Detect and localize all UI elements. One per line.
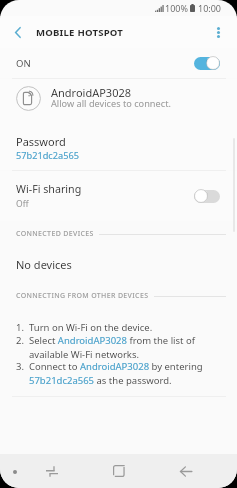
staticText: MOBILE HOTSPOT [36,26,124,39]
staticText: CONNECTED DEVICES [16,229,94,239]
button[interactable]: Recent apps [18,454,85,488]
button[interactable]: Wi-Fi sharing [0,171,237,221]
staticText: 2. [16,334,24,347]
button[interactable]: ON [0,48,237,78]
staticText: ON [16,57,31,70]
staticText: Turn on Wi-Fi on the device. [29,321,153,334]
button[interactable]: More options [203,16,233,48]
staticText: 57b21dc2a565 [16,149,79,162]
staticText: CONNECTING FROM OTHER DEVICES [16,291,149,301]
staticText: Select AndroidAP3028 from the list of av… [29,334,223,360]
staticText: Connect to AndroidAP3028 by entering 57b… [29,360,223,386]
button[interactable]: Hide navigation bar [3,460,27,484]
staticText: 1. [16,321,24,334]
button[interactable]: AndroidAP3028 [0,79,237,118]
button[interactable]: Back [152,454,219,488]
button[interactable]: Password [0,118,237,170]
staticText: Allow all devices to connect. [51,97,171,110]
staticText: 3. [16,360,24,373]
staticText: Password [16,134,66,149]
staticText: 100% [165,2,188,14]
button[interactable]: Home [85,454,152,488]
staticText: Off [16,198,29,210]
staticText: AndroidAP3028 [51,85,132,100]
button[interactable]: Off [194,189,220,203]
staticText: No devices [16,257,72,272]
staticText: Wi-Fi sharing [16,182,82,197]
button[interactable]: On [194,56,220,70]
button[interactable]: Navigate up [0,16,36,48]
staticText: 10:00 [198,2,222,14]
